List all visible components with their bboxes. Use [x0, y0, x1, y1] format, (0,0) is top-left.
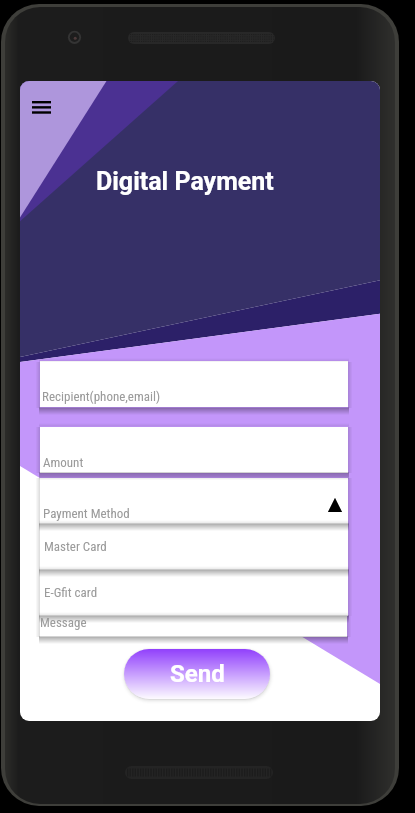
button[interactable] [40, 427, 348, 473]
button[interactable]: Digital Payment [96, 167, 274, 196]
button[interactable] [40, 570, 348, 616]
staticText: E-Gfit card [44, 585, 98, 600]
staticText: Master Card [44, 539, 107, 554]
button[interactable]: Send [124, 649, 270, 699]
button[interactable]: Menu [22, 87, 61, 123]
staticText: Send [170, 660, 225, 688]
button[interactable] [40, 524, 348, 570]
staticText: Digital Payment [96, 167, 274, 196]
button[interactable] [40, 616, 347, 637]
staticText: Recipient(phone,email) [42, 389, 161, 404]
staticText: Message [40, 615, 87, 630]
button[interactable]: Select payment method [324, 495, 346, 517]
button[interactable] [40, 361, 348, 407]
staticText: Payment Method [43, 506, 130, 521]
button[interactable] [40, 478, 348, 524]
staticText: Amount [43, 455, 84, 470]
